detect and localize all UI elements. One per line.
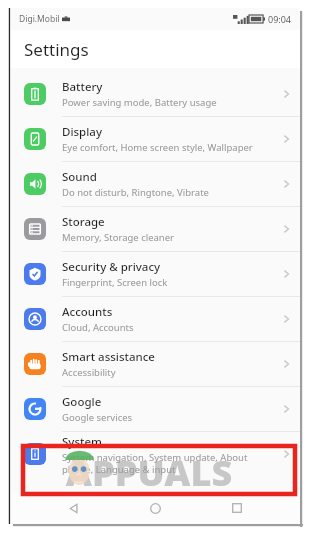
staticText: Fingerprint, Screen lock <box>62 276 168 289</box>
button[interactable]: System <box>10 431 300 476</box>
staticText: Digi.Mobil <box>19 13 60 25</box>
button[interactable]: Google <box>10 386 300 431</box>
button[interactable]: Storage <box>10 206 300 251</box>
staticText: Accessibility <box>62 366 116 379</box>
staticText: Storage <box>62 214 105 230</box>
staticText: APPUALS <box>24 448 274 497</box>
staticText: Memory, Storage cleaner <box>62 231 174 244</box>
staticText: Google services <box>62 411 133 424</box>
staticText: Accounts <box>62 304 113 320</box>
staticText: Sound <box>62 169 97 185</box>
staticText: Display <box>62 124 102 140</box>
staticText: Settings <box>24 38 89 61</box>
button[interactable]: Sound <box>10 161 300 206</box>
staticText: System navigation, System update, About … <box>62 451 248 475</box>
button[interactable]: Accounts <box>10 296 300 341</box>
button[interactable]: Security & privacy <box>10 251 300 296</box>
staticText: Eye comfort, Home screen style, Wallpape… <box>62 141 253 154</box>
button[interactable]: Back <box>56 492 92 524</box>
button[interactable]: Display <box>10 116 300 161</box>
button[interactable]: Smart assistance <box>10 341 300 386</box>
staticText: Cloud, Accounts <box>62 321 134 334</box>
staticText: Google <box>62 394 102 410</box>
staticText: 09:04 <box>268 13 292 25</box>
staticText: Do not disturb, Ringtone, Vibrate <box>62 186 209 199</box>
staticText: Security & privacy <box>62 259 161 275</box>
staticText: Power saving mode, Battery usage <box>62 96 217 109</box>
staticText: Battery <box>62 79 103 95</box>
button[interactable]: Battery <box>10 72 300 116</box>
button[interactable]: Home <box>137 492 173 524</box>
staticText: Smart assistance <box>62 349 155 365</box>
button[interactable]: Recents <box>219 492 255 524</box>
staticText: System <box>62 434 102 450</box>
